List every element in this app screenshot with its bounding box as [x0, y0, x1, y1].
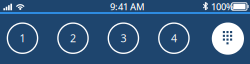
- staticText: 2: [70, 31, 76, 45]
- staticText: 1: [19, 31, 25, 45]
- staticText: 3: [120, 31, 126, 45]
- staticText: 100%: [211, 0, 234, 13]
- button[interactable]: 2: [58, 23, 88, 53]
- button[interactable]: 3: [108, 23, 138, 53]
- button[interactable]: 4: [159, 23, 189, 53]
- staticText: 9:41 AM: [110, 0, 145, 13]
- button[interactable]: 1: [7, 23, 38, 53]
- staticText: 4: [171, 31, 177, 45]
- button[interactable]: Keypad: [212, 22, 244, 55]
